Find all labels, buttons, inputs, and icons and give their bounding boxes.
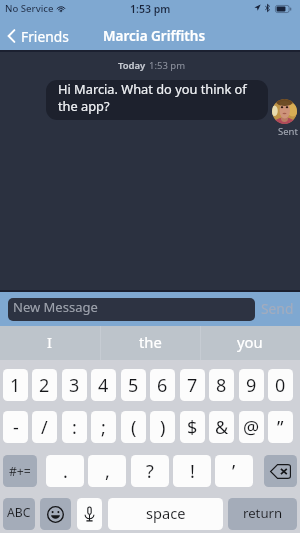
button[interactable]: / bbox=[32, 411, 57, 443]
staticText: 0 bbox=[275, 373, 286, 398]
staticText: 8 bbox=[216, 373, 227, 398]
staticText: ; bbox=[101, 415, 106, 440]
button[interactable]: Delete bbox=[264, 455, 297, 487]
staticText: space bbox=[146, 503, 186, 523]
staticText: 6 bbox=[157, 373, 168, 398]
button[interactable]: Friends bbox=[0, 27, 69, 44]
staticText: & bbox=[215, 415, 229, 440]
button[interactable]: 1 bbox=[3, 369, 28, 401]
button[interactable]: @ bbox=[239, 411, 264, 443]
staticText: ? bbox=[146, 459, 154, 484]
button[interactable]: ABC bbox=[3, 498, 35, 530]
button[interactable]: return bbox=[228, 498, 297, 530]
staticText: ’ bbox=[232, 459, 236, 484]
button[interactable]: the bbox=[100, 326, 200, 360]
staticText: No Service bbox=[5, 2, 54, 15]
button[interactable]: . bbox=[46, 455, 84, 487]
staticText: 7 bbox=[187, 373, 198, 398]
staticText: Marcia Griffiths bbox=[103, 27, 206, 45]
staticText: ABC bbox=[7, 504, 31, 521]
staticText: I bbox=[47, 332, 53, 352]
staticText: 2 bbox=[39, 373, 50, 398]
button[interactable]: Emoji bbox=[40, 498, 71, 530]
button[interactable]: 3 bbox=[62, 369, 87, 401]
button[interactable]: you bbox=[200, 326, 300, 360]
staticText: Friends bbox=[21, 27, 69, 44]
staticText: - bbox=[13, 415, 19, 440]
staticText: ) bbox=[160, 415, 166, 440]
button[interactable]: ; bbox=[91, 411, 116, 443]
staticText: #+= bbox=[9, 463, 31, 480]
staticText: 9 bbox=[246, 373, 257, 398]
staticText: 1 bbox=[10, 373, 21, 398]
staticText: @ bbox=[243, 415, 260, 440]
staticText: New Message bbox=[13, 298, 98, 316]
staticText: the bbox=[139, 332, 162, 352]
button[interactable]: : bbox=[62, 411, 87, 443]
staticText: . bbox=[63, 459, 68, 484]
staticText: return bbox=[243, 504, 283, 522]
staticText: 5 bbox=[128, 373, 139, 398]
button[interactable]: 4 bbox=[91, 369, 116, 401]
button[interactable]: ’ bbox=[215, 455, 253, 487]
button[interactable]: New Message bbox=[8, 298, 255, 321]
button[interactable]: 6 bbox=[150, 369, 175, 401]
staticText: 3 bbox=[69, 373, 80, 398]
staticText: ! bbox=[190, 459, 195, 484]
button[interactable]: ( bbox=[121, 411, 146, 443]
staticText: / bbox=[41, 415, 48, 440]
button[interactable]: , bbox=[88, 455, 126, 487]
staticText: you bbox=[237, 332, 263, 352]
staticText: : bbox=[72, 415, 77, 440]
button[interactable]: 8 bbox=[209, 369, 234, 401]
staticText: , bbox=[105, 459, 110, 484]
button[interactable]: $ bbox=[180, 411, 205, 443]
button[interactable]: Dictate bbox=[77, 498, 102, 530]
button[interactable]: 9 bbox=[239, 369, 264, 401]
button[interactable]: 7 bbox=[180, 369, 205, 401]
button[interactable]: ” bbox=[268, 411, 293, 443]
button[interactable]: Send bbox=[257, 297, 298, 320]
staticText: 4 bbox=[98, 373, 109, 398]
button[interactable]: ? bbox=[131, 455, 169, 487]
button[interactable]: ) bbox=[150, 411, 175, 443]
staticText: Send bbox=[261, 299, 294, 318]
staticText: ( bbox=[131, 415, 137, 440]
staticText: $ bbox=[187, 415, 198, 440]
button[interactable]: space bbox=[108, 498, 223, 530]
button[interactable]: 5 bbox=[121, 369, 146, 401]
staticText: 1:53 pm bbox=[149, 59, 186, 72]
staticText: Today bbox=[118, 59, 146, 72]
button[interactable]: #+= bbox=[3, 455, 37, 487]
staticText: 1:53 pm bbox=[130, 2, 171, 16]
staticText: Sent bbox=[278, 125, 298, 138]
staticText: Hi Marcia. What do you think of the app? bbox=[58, 80, 258, 114]
button[interactable]: I bbox=[0, 326, 100, 360]
button[interactable]: 2 bbox=[32, 369, 57, 401]
button[interactable]: - bbox=[3, 411, 28, 443]
button[interactable]: ! bbox=[173, 455, 211, 487]
staticText: ” bbox=[277, 415, 284, 440]
button[interactable]: & bbox=[209, 411, 234, 443]
button[interactable]: 0 bbox=[268, 369, 293, 401]
